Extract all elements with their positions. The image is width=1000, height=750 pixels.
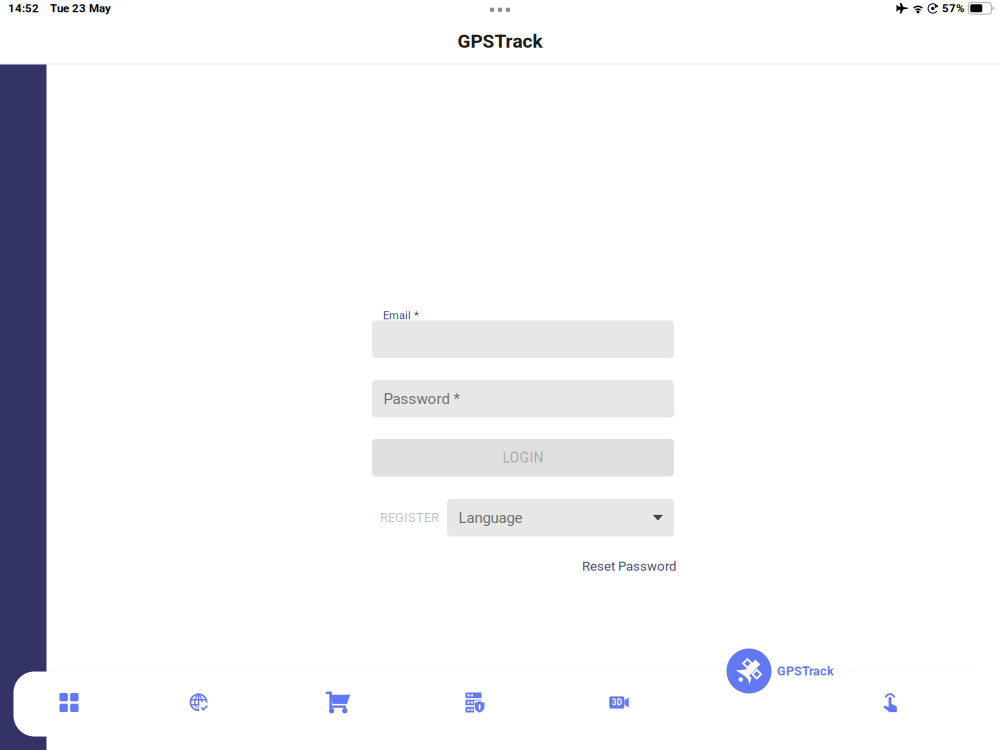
staticText: 14:52 [8, 1, 39, 15]
staticText: 3D [612, 698, 622, 707]
button[interactable]: Touch control [842, 675, 938, 729]
staticText: GPSTrack [457, 30, 542, 52]
staticText: Language [458, 509, 522, 527]
staticText: REGISTER [380, 510, 439, 525]
staticText: Email * [383, 309, 419, 322]
staticText: Reset Password [582, 558, 676, 574]
button[interactable]: Device management [427, 675, 523, 729]
button[interactable]: Language [447, 499, 674, 536]
button[interactable]: Store [290, 675, 386, 729]
staticText: 57% [942, 1, 965, 15]
button[interactable]: Dashboard [21, 675, 117, 729]
button[interactable]: Reset Password [582, 558, 676, 574]
button[interactable]: REGISTER [380, 510, 439, 525]
staticText: Tue 23 May [50, 1, 111, 15]
button[interactable]: 3D view [571, 675, 667, 729]
button[interactable]: Network coverage [151, 675, 247, 729]
staticText: Password * [383, 390, 459, 408]
staticText: LOGIN [502, 449, 543, 466]
staticText: GPSTrack [777, 664, 834, 679]
button[interactable]: LOGIN [372, 439, 674, 476]
